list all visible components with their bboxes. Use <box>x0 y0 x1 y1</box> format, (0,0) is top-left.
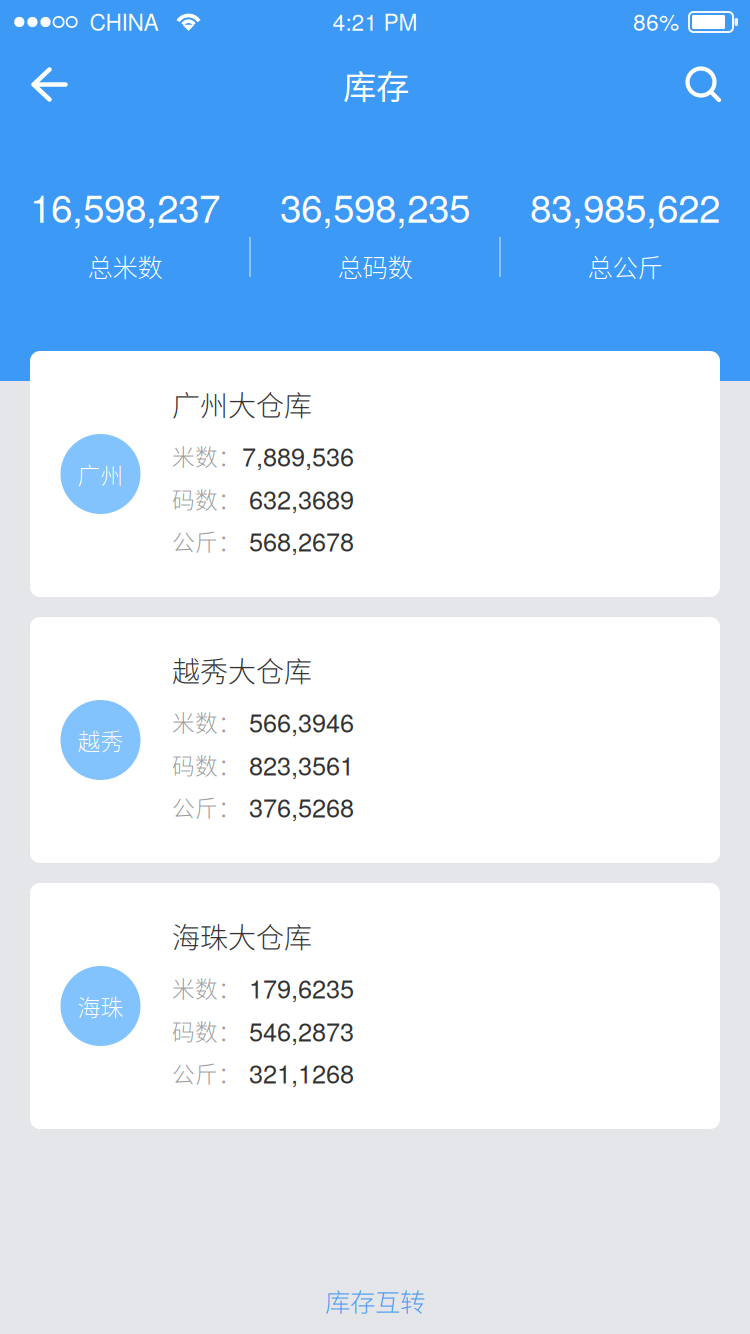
staticText: 566,3946 <box>249 703 354 740</box>
staticText: 546,2873 <box>249 1012 354 1049</box>
staticText: 码数： <box>172 482 241 515</box>
staticText: 码数： <box>172 1014 241 1047</box>
staticText: 16,598,237 <box>30 178 220 234</box>
staticText: 库存 <box>343 60 409 109</box>
staticText: 83,985,622 <box>530 178 720 234</box>
button[interactable]: 越秀 <box>30 617 720 863</box>
staticText: 总公斤 <box>587 248 662 284</box>
staticText: 36,598,235 <box>280 178 470 234</box>
staticText: 广州大仓库 <box>172 384 312 424</box>
staticText: 越秀大仓库 <box>172 650 312 690</box>
staticText: 86% <box>633 5 679 37</box>
staticText: 823,3561 <box>249 746 354 783</box>
staticText: 广州 <box>77 458 123 490</box>
staticText: 632,3689 <box>249 480 354 517</box>
staticText: 公斤： <box>172 790 241 823</box>
staticText: 米数： <box>172 439 241 472</box>
button[interactable]: Search <box>657 40 749 128</box>
staticText: 码数： <box>172 748 241 781</box>
staticText: 海珠 <box>77 990 123 1022</box>
staticText: 越秀 <box>77 724 123 756</box>
staticText: 海珠大仓库 <box>172 916 312 956</box>
staticText: 7,889,536 <box>242 437 354 474</box>
staticText: 公斤： <box>172 1056 241 1089</box>
staticText: 米数： <box>172 971 241 1004</box>
button[interactable]: 海珠 <box>30 883 720 1129</box>
button[interactable]: Back <box>3 40 95 128</box>
staticText: 179,6235 <box>249 969 354 1006</box>
staticText: 376,5268 <box>249 788 354 825</box>
staticText: 321,1268 <box>249 1054 354 1091</box>
button[interactable]: 广州 <box>30 351 720 597</box>
staticText: 总米数 <box>87 248 162 284</box>
staticText: 总码数 <box>337 248 412 284</box>
staticText: CHINA <box>89 5 158 37</box>
staticText: 公斤： <box>172 524 241 557</box>
staticText: 4:21 PM <box>332 5 417 37</box>
staticText: 米数： <box>172 705 241 738</box>
button[interactable]: 库存互转 <box>225 1268 525 1332</box>
staticText: 568,2678 <box>249 522 354 559</box>
staticText: 库存互转 <box>325 1282 425 1319</box>
